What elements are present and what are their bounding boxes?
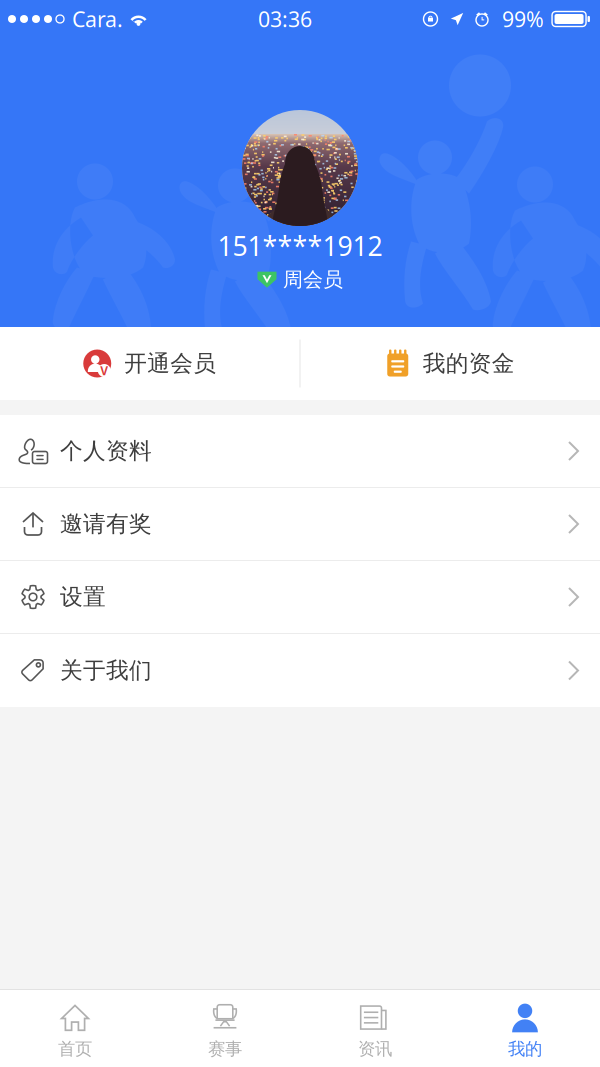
staticText: 开通会员 bbox=[124, 350, 216, 377]
staticText: 151****1912 bbox=[217, 228, 382, 263]
staticText: 99% bbox=[502, 5, 544, 33]
button[interactable]: 资讯 bbox=[300, 990, 450, 1067]
button[interactable]: 赛事 bbox=[150, 990, 300, 1067]
staticText: 关于我们 bbox=[60, 657, 152, 684]
staticText: 资讯 bbox=[358, 1038, 392, 1060]
staticText: 我的资金 bbox=[423, 350, 515, 377]
staticText: 我的 bbox=[508, 1038, 542, 1060]
button[interactable]: 设置 bbox=[0, 561, 600, 634]
staticText: 周会员 bbox=[283, 267, 343, 292]
button[interactable]: 我的 bbox=[450, 990, 600, 1067]
staticText: Cara. bbox=[72, 5, 123, 33]
staticText: 设置 bbox=[60, 583, 106, 611]
staticText: 首页 bbox=[58, 1038, 92, 1060]
button[interactable]: 个人资料 bbox=[0, 415, 600, 488]
button[interactable]: 我的资金 bbox=[300, 327, 600, 400]
button[interactable]: 邀请有奖 bbox=[0, 488, 600, 561]
staticText: 邀请有奖 bbox=[60, 510, 152, 538]
staticText: 03:36 bbox=[258, 5, 312, 33]
staticText: 赛事 bbox=[208, 1038, 242, 1060]
staticText: V bbox=[100, 362, 108, 378]
button[interactable]: 首页 bbox=[0, 990, 150, 1067]
button[interactable]: 关于我们 bbox=[0, 634, 600, 707]
staticText: 个人资料 bbox=[60, 437, 152, 465]
button[interactable]: V bbox=[0, 327, 299, 400]
